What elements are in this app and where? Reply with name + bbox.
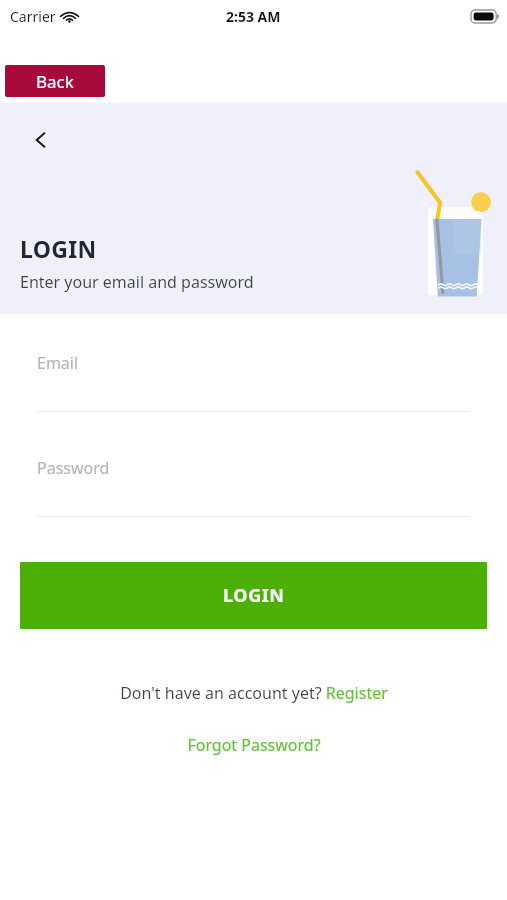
staticText: Password bbox=[37, 457, 110, 479]
button[interactable]: Email bbox=[37, 352, 470, 412]
staticText: Forgot Password? bbox=[187, 734, 321, 756]
button[interactable]: LOGIN bbox=[20, 562, 487, 629]
button[interactable]: Don't have an account yet? Register bbox=[0, 677, 507, 709]
staticText: 2:53 AM bbox=[226, 7, 281, 26]
button[interactable]: Password bbox=[37, 457, 470, 517]
staticText: Don't have an account yet? Register bbox=[120, 682, 388, 704]
button[interactable]: Forgot Password? bbox=[0, 729, 507, 761]
button[interactable]: Back bbox=[22, 121, 60, 159]
staticText: Carrier bbox=[10, 7, 56, 26]
staticText: LOGIN bbox=[223, 583, 285, 608]
staticText: Enter your email and password bbox=[20, 271, 254, 293]
button[interactable]: Back bbox=[5, 65, 105, 97]
staticText: Email bbox=[37, 352, 79, 374]
staticText: Back bbox=[36, 70, 74, 93]
staticText: LOGIN bbox=[20, 233, 97, 264]
